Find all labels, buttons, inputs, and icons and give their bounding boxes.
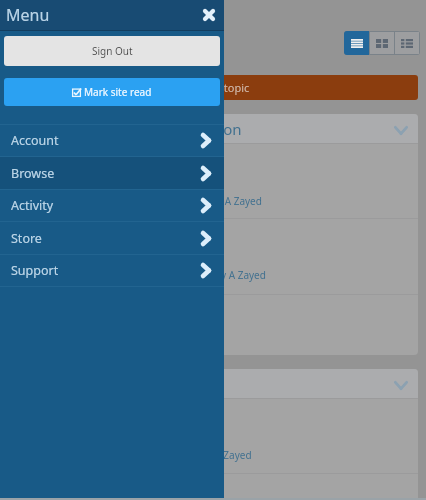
staticText: Menu <box>6 4 50 26</box>
staticText: Activity <box>11 197 54 214</box>
button[interactable]: Start new topic <box>8 75 418 100</box>
button[interactable]: Account <box>0 125 224 156</box>
staticText: Account <box>11 132 59 149</box>
button[interactable]: Last post by A Zayed <box>8 219 418 294</box>
button[interactable] <box>8 474 418 500</box>
button[interactable]: Support <box>0 255 224 286</box>
staticText: Sign Out <box>92 44 133 58</box>
staticText: Store <box>11 230 42 247</box>
button[interactable]: Grid view <box>370 32 394 54</box>
staticText: Mark site read <box>84 85 152 99</box>
staticText: Last post by M Zayed <box>153 448 252 462</box>
button[interactable]: Last post by A Zayed <box>8 144 418 218</box>
button[interactable]: Compact view <box>395 32 419 54</box>
button[interactable]: Off Topic Discussion <box>8 369 418 398</box>
button[interactable]: Close menu <box>200 6 218 24</box>
button[interactable]: List view <box>344 31 369 55</box>
button[interactable]: Browse <box>0 157 224 189</box>
button[interactable]: Last post by M Zayed <box>8 399 418 473</box>
staticText: Support <box>11 262 59 279</box>
staticText: Browse <box>11 165 55 182</box>
button[interactable]: Activity <box>0 190 224 221</box>
staticText: Start new topic <box>172 80 250 95</box>
staticText: Forums and General Discussion <box>19 119 242 139</box>
button[interactable]: Forums and General Discussion <box>8 114 418 143</box>
button[interactable]: Mark site read <box>4 78 220 106</box>
button[interactable] <box>8 295 418 355</box>
button[interactable]: Store <box>0 222 224 254</box>
button[interactable]: Sign Out <box>4 36 220 66</box>
staticText: Last post by A Zayed <box>170 268 266 282</box>
staticText: Last post by A Zayed <box>166 194 262 208</box>
